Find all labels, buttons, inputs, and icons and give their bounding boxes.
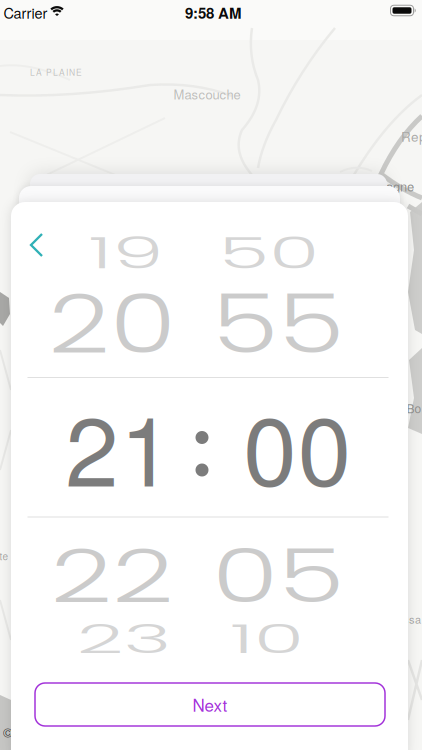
staticText: 10 — [223, 572, 310, 706]
staticText: 00 — [243, 376, 351, 514]
staticText: 9:58 AM — [185, 2, 241, 23]
button[interactable]: Next — [35, 683, 385, 726]
staticText: Bo — [406, 399, 421, 417]
staticText: 22 — [57, 509, 167, 644]
button[interactable] — [18, 223, 54, 267]
staticText: 50 — [210, 186, 328, 321]
staticText: 23 — [68, 572, 179, 706]
staticText: 55 — [219, 257, 337, 391]
staticText: 05 — [219, 509, 337, 644]
staticText: Mascouche — [173, 85, 240, 103]
staticText: agne — [386, 177, 414, 195]
staticText: Rep — [401, 126, 422, 146]
staticText: Next — [192, 692, 227, 717]
staticText: te — [0, 549, 8, 563]
staticText: ssa — [403, 611, 421, 627]
staticText: 21 — [65, 376, 173, 514]
staticText: 19 — [82, 186, 170, 321]
staticText: © — [3, 723, 13, 741]
staticText: 20 — [55, 257, 169, 391]
staticText: LA PLAINE — [30, 66, 82, 78]
staticText: Carrier — [3, 2, 47, 23]
